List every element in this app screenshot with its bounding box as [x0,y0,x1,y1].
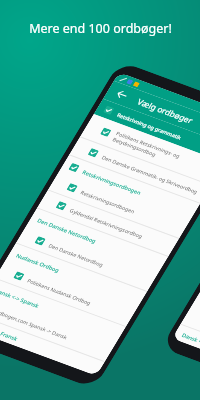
button[interactable]: Back [110,84,134,106]
button[interactable]: Retskrivning og grammatik [90,63,200,198]
staticText: Den Danske Netordbog [46,227,107,283]
staticText: Ordbogen.com Spansk -> Dansk [197,298,200,372]
button[interactable]: Dansk <-> Spansk [187,254,200,391]
button[interactable]: Den Danske Netordbog [12,190,162,327]
staticText: Dansk <-> Spansk [0,275,43,321]
staticText: Retskrivning og grammatik [114,94,185,158]
button[interactable]: Ordbogen.com Spansk -> Dansk [177,271,200,400]
staticText: Politikens Retskrivnings- og Betydningso… [108,112,185,183]
staticText: Retskrivningsordbogen [78,174,138,229]
button[interactable]: Dansk <-> Fransk [0,278,108,400]
staticText: Dansk <-> Fransk [0,309,21,353]
staticText: Vælg ordbøger [133,81,198,140]
staticText: Den Danske Netordbog [35,201,99,260]
button[interactable]: Politikens Retskrivnings- og Betydningso… [75,78,200,221]
button[interactable]: Ordbogen.com Spansk -> Dansk [0,260,120,397]
staticText: Den Danske Grammatik- og Skriveordbog [99,128,200,221]
button[interactable]: Politikens Nudansk Ordbog [0,225,141,362]
staticText: Ordbogen.com Spansk -> Dansk [0,287,71,361]
staticText: Mere end 100 ordbøger! [29,20,172,37]
button[interactable]: Dansk <-> Fransk [169,289,200,400]
staticText: Retskrivningsordbogen [80,153,145,212]
button[interactable]: Dansk <-> Spansk [0,243,130,380]
button[interactable]: Nudansk Ordbog [1,208,151,345]
staticText: Nudansk Ordbog [13,240,63,285]
button[interactable]: Den Danske Grammatik- og Skriveordbog [65,102,200,239]
button[interactable]: Gyldendal Retskrivningsordbog [33,155,183,292]
staticText: Gyldendal Retskrivningsordbog [67,187,146,259]
button[interactable]: Den Danske Netordbog [22,173,172,310]
staticText: Politikens Nudansk Ordbog [25,260,94,323]
button[interactable]: Politikens Nudansk Ordbog [198,236,200,373]
staticText: Dansk <-> Fransk [179,320,200,364]
button[interactable]: Retskrivningsordbogen [44,137,194,274]
staticText: Dansk <-> Spansk [199,286,200,332]
button[interactable]: Retskrivningsordbogen [54,120,200,257]
